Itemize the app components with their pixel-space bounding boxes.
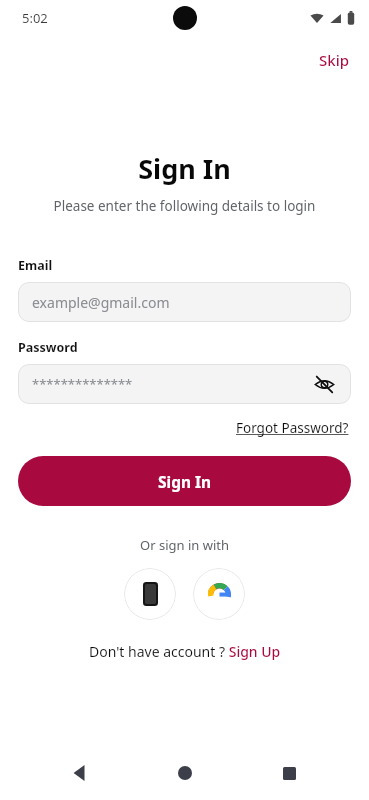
- staticText: Please enter the following details to lo…: [0, 197, 369, 215]
- staticText: Don't have account ? Sign Up: [89, 642, 281, 661]
- button[interactable]: Skip: [311, 46, 357, 74]
- staticText: Email: [18, 257, 53, 274]
- button[interactable]: Don't have account ? Sign Up: [0, 642, 369, 661]
- staticText: example@gmail.com: [32, 293, 170, 312]
- button[interactable]: example@gmail.com: [18, 282, 351, 322]
- button[interactable]: Sign in with phone: [124, 568, 176, 620]
- staticText: 5:02: [22, 9, 48, 27]
- staticText: Password: [18, 339, 78, 356]
- button[interactable]: Recent apps: [265, 749, 313, 797]
- button[interactable]: Show password: [311, 371, 337, 397]
- staticText: Sign In: [0, 150, 369, 187]
- button[interactable]: Back: [56, 749, 104, 797]
- button[interactable]: Forgot Password?: [234, 416, 351, 440]
- button[interactable]: Sign in with Google: [193, 568, 245, 620]
- button[interactable]: Home: [161, 749, 209, 797]
- button[interactable]: Sign In: [18, 456, 351, 506]
- staticText: Forgot Password?: [236, 419, 349, 437]
- staticText: Skip: [319, 50, 349, 70]
- staticText: Or sign in with: [0, 536, 369, 554]
- staticText: **************: [32, 375, 133, 393]
- staticText: Sign In: [158, 471, 212, 492]
- button[interactable]: **************: [18, 364, 351, 404]
